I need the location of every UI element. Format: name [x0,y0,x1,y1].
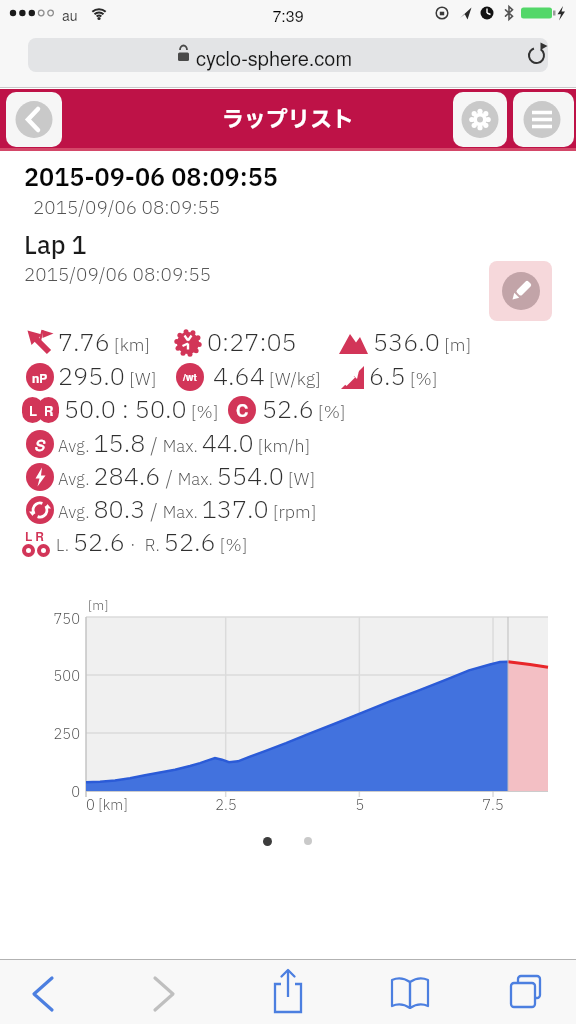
button[interactable] [266,964,310,1018]
staticText: nP [32,369,48,386]
staticText: 50.0 : 50.0 [%] [64,393,219,427]
staticText: L [29,401,37,420]
staticText: 52.6 [%] [262,393,346,427]
staticText: 5 [340,795,380,816]
staticText: 0 [km] [86,795,128,816]
button[interactable] [388,968,432,1018]
staticText: 250 [46,724,80,745]
staticText: 6.5 [%] [369,360,438,394]
staticText: 2.5 [206,795,246,816]
staticText: 2015/09/06 08:09:55 [24,262,212,289]
staticText: 536.0 [m] [373,326,471,360]
button[interactable] [263,837,272,846]
staticText: 7.76 [km] [58,326,150,360]
staticText: au [62,5,78,25]
staticText: 2015/09/06 08:09:55 [33,195,221,222]
button[interactable] [6,92,62,147]
staticText: ラップリスト [0,104,576,137]
button[interactable] [513,92,574,147]
staticText: C [236,398,249,422]
button[interactable] [506,968,550,1018]
staticText: LR [25,527,47,544]
staticText: [m] [88,596,109,615]
staticText: 0:27:05 [207,326,297,360]
staticText: 7:39 [0,4,576,27]
staticText: 7.5 [473,795,513,816]
staticText: Avg. 80.3 / Max. 137.0 [rpm] [58,493,317,527]
staticText: Lap 1 [24,229,87,265]
staticText: 750 [46,609,80,630]
staticText: 2015-09-06 08:09:55 [24,161,278,197]
staticText: L. 52.6・ R. 52.6 [%] [56,526,248,560]
staticText: R [44,401,54,420]
button[interactable] [28,38,548,72]
staticText: cyclo-sphere.com [196,43,353,72]
button[interactable] [304,837,312,845]
staticText: Avg. 15.8 / Max. 44.0 [km/h] [58,427,311,461]
staticText: 0 [46,782,80,803]
button[interactable] [489,261,552,321]
button[interactable] [22,968,66,1018]
staticText: S [35,434,46,455]
staticText: 500 [46,666,80,687]
staticText: /wt [183,370,197,384]
staticText: 4.64 [W/kg] [213,360,321,394]
button[interactable] [143,968,187,1018]
button[interactable] [453,92,507,147]
staticText: Avg. 284.6 / Max. 554.0 [W] [58,460,316,494]
staticText: 295.0 [W] [58,360,157,394]
